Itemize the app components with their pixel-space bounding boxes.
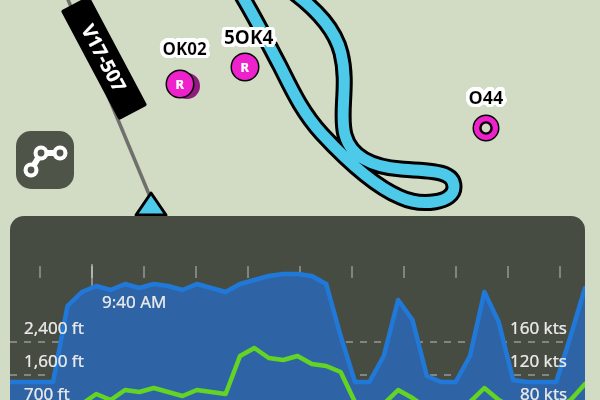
button[interactable]: Route [16,131,74,189]
button[interactable] [10,216,585,400]
